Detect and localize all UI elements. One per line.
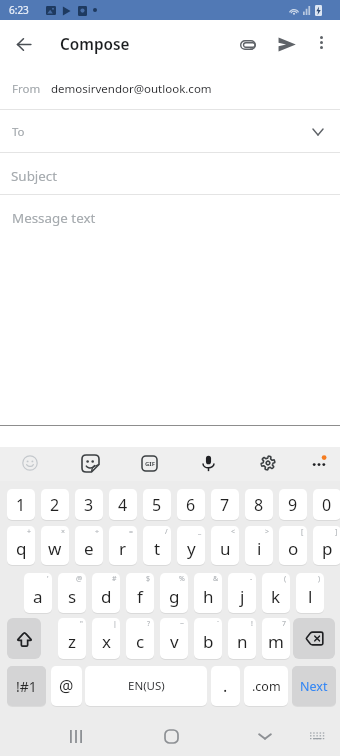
staticText: 8 xyxy=(254,494,264,516)
button[interactable]: j xyxy=(228,573,256,613)
button[interactable]: EN(US) xyxy=(85,666,207,706)
button[interactable]: Change keyboard xyxy=(301,719,335,753)
button[interactable]: 0 xyxy=(313,489,340,520)
staticText: g xyxy=(169,585,180,608)
staticText: 5 xyxy=(152,494,162,516)
staticText: p xyxy=(322,537,333,560)
staticText: 6 xyxy=(186,494,196,516)
button[interactable]: @ xyxy=(51,666,82,706)
staticText: o xyxy=(288,537,299,560)
button[interactable]: 2 xyxy=(41,489,69,520)
button[interactable]: u xyxy=(211,526,239,565)
button[interactable]: To xyxy=(0,110,340,153)
button[interactable]: Home xyxy=(154,719,188,753)
staticText: To xyxy=(12,124,25,140)
button[interactable]: Shift xyxy=(7,618,41,659)
staticText: f xyxy=(137,585,143,608)
button[interactable]: k xyxy=(262,573,290,613)
button[interactable]: n xyxy=(228,618,256,659)
button[interactable]: g xyxy=(160,573,188,613)
button[interactable]: z xyxy=(58,618,86,659)
button[interactable]: x xyxy=(92,618,120,659)
button[interactable]: 7 xyxy=(211,489,239,520)
button[interactable]: i xyxy=(245,526,273,565)
button[interactable]: h xyxy=(194,573,222,613)
staticText: < xyxy=(231,527,236,537)
button[interactable]: 9 xyxy=(279,489,307,520)
button[interactable]: p xyxy=(313,526,340,565)
button[interactable]: Subject xyxy=(0,153,340,195)
button[interactable]: 8 xyxy=(245,489,273,520)
button[interactable]: f xyxy=(126,573,154,613)
staticText: [ xyxy=(301,527,304,537)
button[interactable]: q xyxy=(7,526,35,565)
staticText: l xyxy=(308,585,313,608)
staticText: ` xyxy=(217,619,219,629)
button[interactable]: s xyxy=(58,573,86,613)
button[interactable]: Attach file xyxy=(229,26,266,63)
button[interactable]: Message text xyxy=(0,195,340,239)
button[interactable]: 3 xyxy=(75,489,103,520)
button[interactable]: Show Cc and Bcc xyxy=(306,120,330,144)
staticText: # xyxy=(112,574,117,584)
staticText: _ xyxy=(198,527,202,537)
staticText: d xyxy=(101,585,112,608)
button[interactable]: More xyxy=(302,446,336,480)
button[interactable]: !#1 xyxy=(7,666,46,706)
staticText: y xyxy=(187,537,196,560)
button[interactable]: w xyxy=(41,526,69,565)
staticText: e xyxy=(84,537,94,560)
staticText: ] xyxy=(335,527,338,537)
button[interactable]: 5 xyxy=(143,489,171,520)
staticText: x xyxy=(102,630,111,653)
button[interactable]: l xyxy=(296,573,324,613)
button[interactable]: e xyxy=(75,526,103,565)
button[interactable]: r xyxy=(109,526,137,565)
staticText: r xyxy=(119,537,127,560)
staticText: n xyxy=(237,630,248,653)
staticText: ? xyxy=(147,619,151,629)
button[interactable]: a xyxy=(24,573,52,613)
button[interactable]: Backspace xyxy=(293,618,335,659)
button[interactable]: GIF xyxy=(132,446,166,480)
button[interactable]: 1 xyxy=(7,489,35,520)
button[interactable]: More options xyxy=(305,26,338,59)
button[interactable]: Emoji xyxy=(13,446,47,480)
button[interactable]: Next xyxy=(292,666,336,706)
staticText: a xyxy=(33,585,43,608)
staticText: h xyxy=(203,585,214,608)
button[interactable]: Back xyxy=(5,26,42,63)
staticText: s xyxy=(68,585,77,608)
staticText: v xyxy=(170,630,179,653)
button[interactable]: Stickers xyxy=(73,446,107,480)
button[interactable]: t xyxy=(143,526,171,565)
button[interactable]: y xyxy=(177,526,205,565)
button[interactable]: o xyxy=(279,526,307,565)
staticText: & xyxy=(213,574,219,584)
button[interactable]: From xyxy=(0,67,340,110)
button[interactable]: Voice input xyxy=(191,446,225,480)
button[interactable]: Send xyxy=(268,26,305,63)
button[interactable]: Keyboard settings xyxy=(251,446,285,480)
button[interactable]: m xyxy=(262,618,290,659)
staticText: w xyxy=(48,537,62,560)
staticText: 0 xyxy=(322,494,332,516)
button[interactable]: 6 xyxy=(177,489,205,520)
button[interactable]: c xyxy=(126,618,154,659)
button[interactable]: Hide keyboard xyxy=(248,719,282,753)
staticText: c xyxy=(136,630,145,653)
button[interactable]: .com xyxy=(244,666,288,706)
staticText: q xyxy=(16,537,27,560)
button[interactable]: 4 xyxy=(109,489,137,520)
button[interactable]: Recent apps xyxy=(59,719,93,753)
staticText: z xyxy=(68,630,76,653)
staticText: % xyxy=(179,574,185,584)
button[interactable]: d xyxy=(92,573,120,613)
staticText: GIF xyxy=(145,460,155,468)
button[interactable]: b xyxy=(194,618,222,659)
staticText: | xyxy=(113,619,117,629)
button[interactable]: v xyxy=(160,618,188,659)
staticText: 2 xyxy=(50,494,60,516)
staticText: 9 xyxy=(288,494,298,516)
button[interactable]: . xyxy=(211,666,240,706)
